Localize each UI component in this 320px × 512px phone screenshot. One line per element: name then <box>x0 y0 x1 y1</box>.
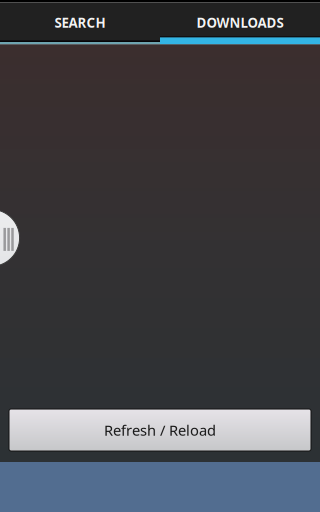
staticText: DOWNLOADS <box>196 14 283 31</box>
staticText: Refresh / Reload <box>104 420 216 440</box>
staticText: SEARCH <box>54 14 105 31</box>
button[interactable]: DOWNLOADS <box>160 2 320 44</box>
button[interactable]: Open navigation drawer <box>0 209 20 266</box>
button[interactable]: Refresh / Reload <box>9 409 311 451</box>
button[interactable]: SEARCH <box>0 2 160 44</box>
